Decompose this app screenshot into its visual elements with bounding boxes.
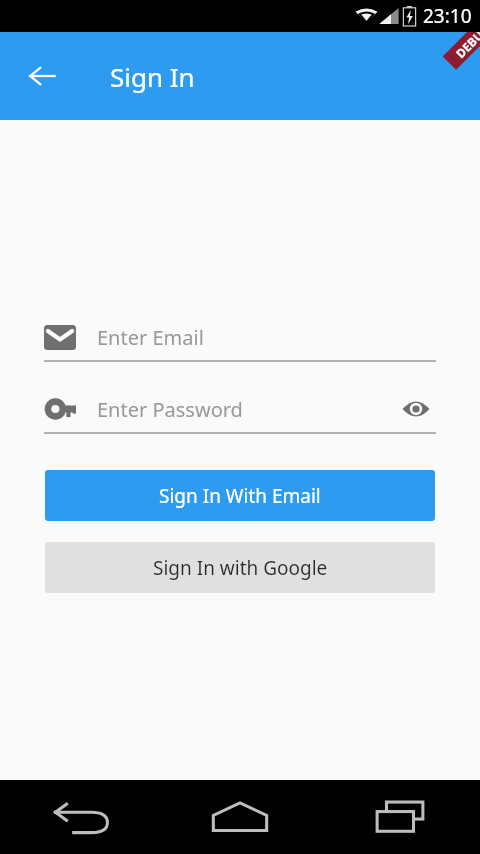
staticText: Sign In bbox=[110, 59, 195, 94]
button[interactable]: Recent apps bbox=[320, 780, 480, 854]
staticText: Sign In with Google bbox=[153, 555, 328, 581]
staticText: 23:10 bbox=[423, 3, 472, 29]
staticText: Enter Email bbox=[97, 324, 204, 351]
staticText: Sign In With Email bbox=[159, 483, 321, 509]
button[interactable]: Enter Password bbox=[44, 384, 436, 434]
button[interactable]: Show password bbox=[396, 389, 436, 429]
staticText: Enter Password bbox=[97, 396, 243, 423]
staticText: DEBUG bbox=[452, 32, 480, 61]
button[interactable]: Sign In with Google bbox=[45, 542, 435, 593]
button[interactable]: Back bbox=[18, 52, 66, 100]
button[interactable]: Sign In With Email bbox=[45, 470, 435, 521]
button[interactable]: Back bbox=[0, 780, 160, 854]
button[interactable]: Enter Email bbox=[44, 312, 436, 362]
button[interactable]: Home bbox=[160, 780, 320, 854]
